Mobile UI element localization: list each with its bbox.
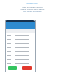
staticText: MOBILE APP bbox=[26, 2, 38, 5]
button[interactable] bbox=[5, 45, 35, 49]
button[interactable]: Confirm bbox=[8, 66, 17, 70]
button[interactable] bbox=[5, 49, 35, 53]
button[interactable] bbox=[5, 41, 35, 45]
button[interactable] bbox=[5, 61, 35, 65]
button[interactable] bbox=[5, 53, 35, 57]
button[interactable] bbox=[5, 37, 35, 41]
button[interactable] bbox=[5, 57, 35, 61]
button[interactable] bbox=[5, 33, 35, 37]
button[interactable]: Cancel bbox=[22, 66, 32, 70]
staticText: Get notified about open shifts and apply bbox=[20, 5, 45, 11]
staticText: for shifts instantly bbox=[23, 10, 42, 13]
